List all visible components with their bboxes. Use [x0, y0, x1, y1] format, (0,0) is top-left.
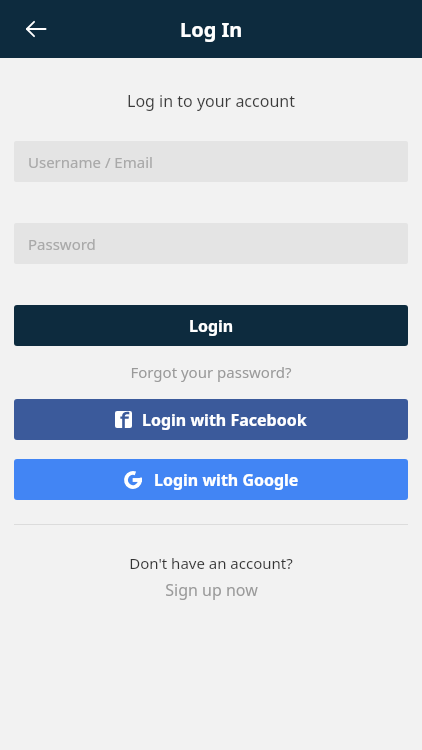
staticText: Password: [28, 234, 96, 254]
staticText: Login with Google: [154, 469, 299, 491]
staticText: Username / Email: [28, 152, 153, 172]
staticText: Forgot your password?: [130, 362, 292, 382]
staticText: Login: [189, 315, 234, 337]
button[interactable]: Password: [14, 223, 408, 264]
button[interactable]: Username / Email: [14, 141, 408, 182]
staticText: Login with Facebook: [142, 409, 307, 431]
button[interactable]: Login: [14, 305, 408, 346]
staticText: Log in to your account: [0, 90, 422, 112]
staticText: Log In: [180, 16, 243, 43]
staticText: Don't have an account?: [0, 553, 422, 573]
button[interactable]: Login with Facebook: [14, 399, 408, 440]
button[interactable]: Forgot your password?: [0, 357, 422, 387]
button[interactable]: Sign up now: [0, 579, 422, 601]
staticText: Sign up now: [165, 579, 258, 601]
button[interactable]: Login with Google: [14, 459, 408, 500]
button[interactable]: Back: [14, 7, 58, 51]
